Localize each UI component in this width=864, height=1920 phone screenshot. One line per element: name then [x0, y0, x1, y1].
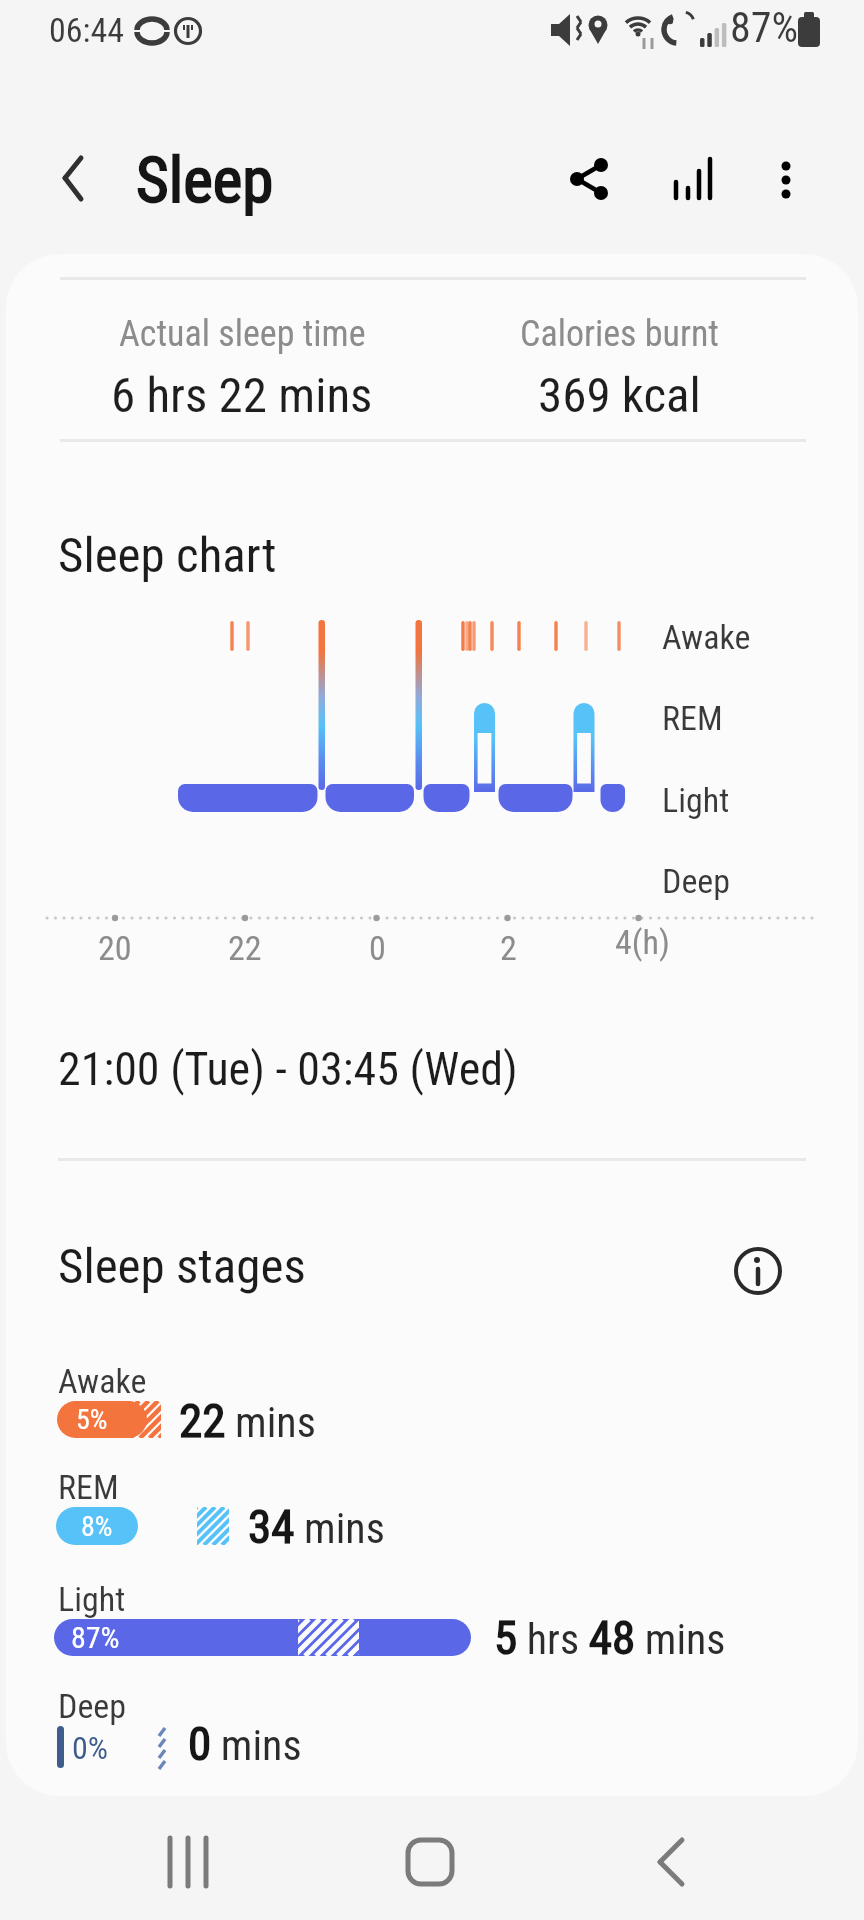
- staticText: Awake: [58, 1361, 147, 1401]
- staticText: 34 mins: [248, 1499, 385, 1554]
- button[interactable]: [624, 1826, 720, 1898]
- staticText: Sleep chart: [58, 527, 277, 584]
- button[interactable]: [664, 150, 724, 210]
- staticText: 6 hrs 22 mins: [111, 367, 373, 424]
- button[interactable]: [140, 1826, 236, 1898]
- staticText: Actual sleep time: [119, 313, 366, 355]
- staticText: 0%: [72, 1729, 109, 1767]
- button[interactable]: [40, 150, 100, 210]
- staticText: Deep: [58, 1686, 127, 1726]
- staticText: 8%: [81, 1510, 113, 1543]
- staticText: 87%: [71, 1620, 120, 1655]
- staticText: Deep: [662, 861, 731, 901]
- button[interactable]: [730, 1243, 786, 1299]
- staticText: 20: [98, 928, 132, 968]
- button[interactable]: [560, 150, 620, 210]
- staticText: REM: [662, 698, 723, 738]
- staticText: 0 mins: [188, 1716, 302, 1771]
- staticText: 2: [500, 928, 517, 968]
- staticText: 4(h): [615, 922, 670, 962]
- staticText: REM: [58, 1467, 119, 1507]
- staticText: Sleep: [136, 144, 274, 218]
- staticText: 22: [228, 928, 262, 968]
- staticText: 21:00 (Tue) - 03:45 (Wed): [58, 1042, 518, 1096]
- staticText: Light: [58, 1579, 126, 1619]
- staticText: Light: [662, 780, 730, 820]
- staticText: 06:44: [49, 10, 125, 50]
- staticText: 22 mins: [179, 1393, 316, 1448]
- staticText: 5 hrs 48 mins: [494, 1610, 726, 1665]
- staticText: Calories burnt: [520, 313, 719, 355]
- staticText: Sleep stages: [58, 1238, 306, 1295]
- staticText: Awake: [662, 617, 751, 657]
- button[interactable]: [382, 1826, 478, 1898]
- staticText: 369 kcal: [538, 367, 701, 424]
- button[interactable]: [756, 150, 816, 210]
- staticText: 87%: [730, 3, 799, 52]
- staticText: 5%: [76, 1403, 108, 1436]
- staticText: 0: [369, 928, 386, 968]
